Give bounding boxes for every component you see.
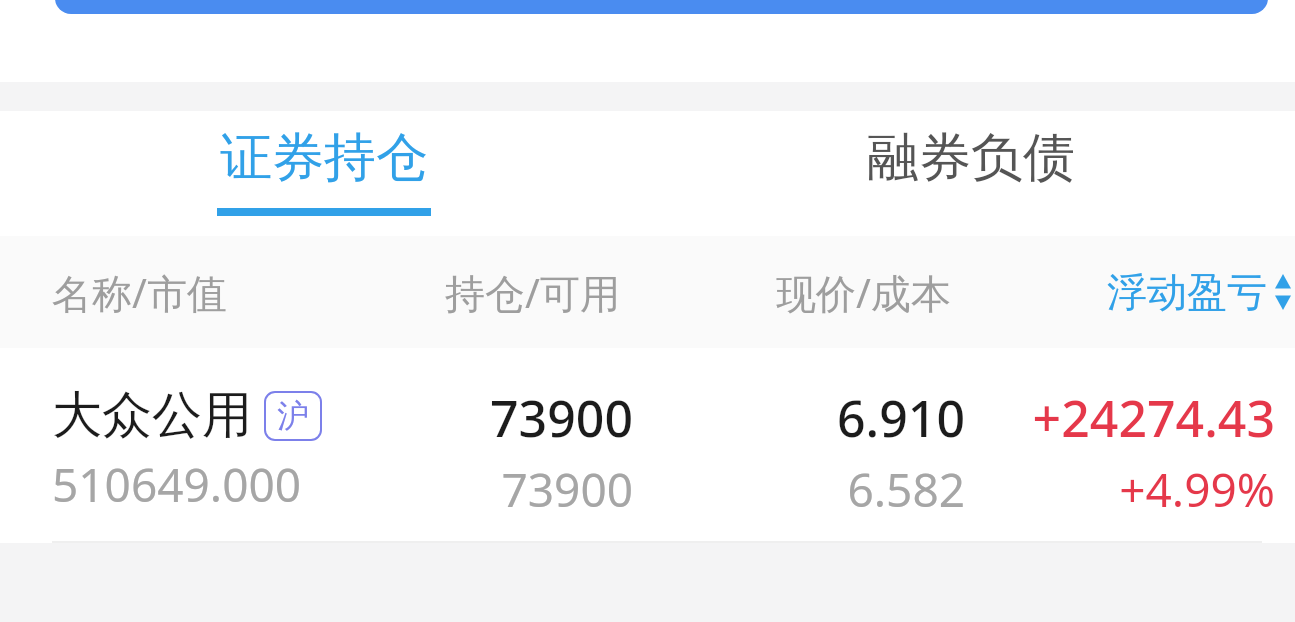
staticText: 73900 — [501, 458, 633, 521]
staticText: 沪 — [277, 396, 309, 436]
button[interactable]: 大众公用 — [0, 348, 1295, 542]
staticText: +4.99% — [1119, 458, 1275, 521]
staticText: 大众公用 — [52, 384, 252, 447]
button[interactable]: Primary action — [55, 0, 1268, 14]
staticText: 证券持仓 — [220, 125, 428, 191]
staticText: 6.582 — [847, 458, 965, 521]
staticText: 浮动盈亏 — [1107, 267, 1267, 317]
staticText: 持仓/可用 — [445, 265, 620, 320]
staticText: 融券负债 — [867, 125, 1075, 191]
staticText: +24274.43 — [1032, 384, 1275, 452]
staticText: 73900 — [490, 384, 633, 452]
staticText: 现价/成本 — [776, 265, 951, 320]
button[interactable]: 融券负债 — [647, 111, 1295, 236]
staticText: 6.910 — [837, 384, 965, 452]
staticText: 名称/市值 — [52, 265, 227, 320]
staticText: 510649.000 — [52, 453, 302, 516]
button[interactable]: 证券持仓 — [0, 111, 647, 236]
button[interactable]: 浮动盈亏 — [1107, 236, 1291, 348]
